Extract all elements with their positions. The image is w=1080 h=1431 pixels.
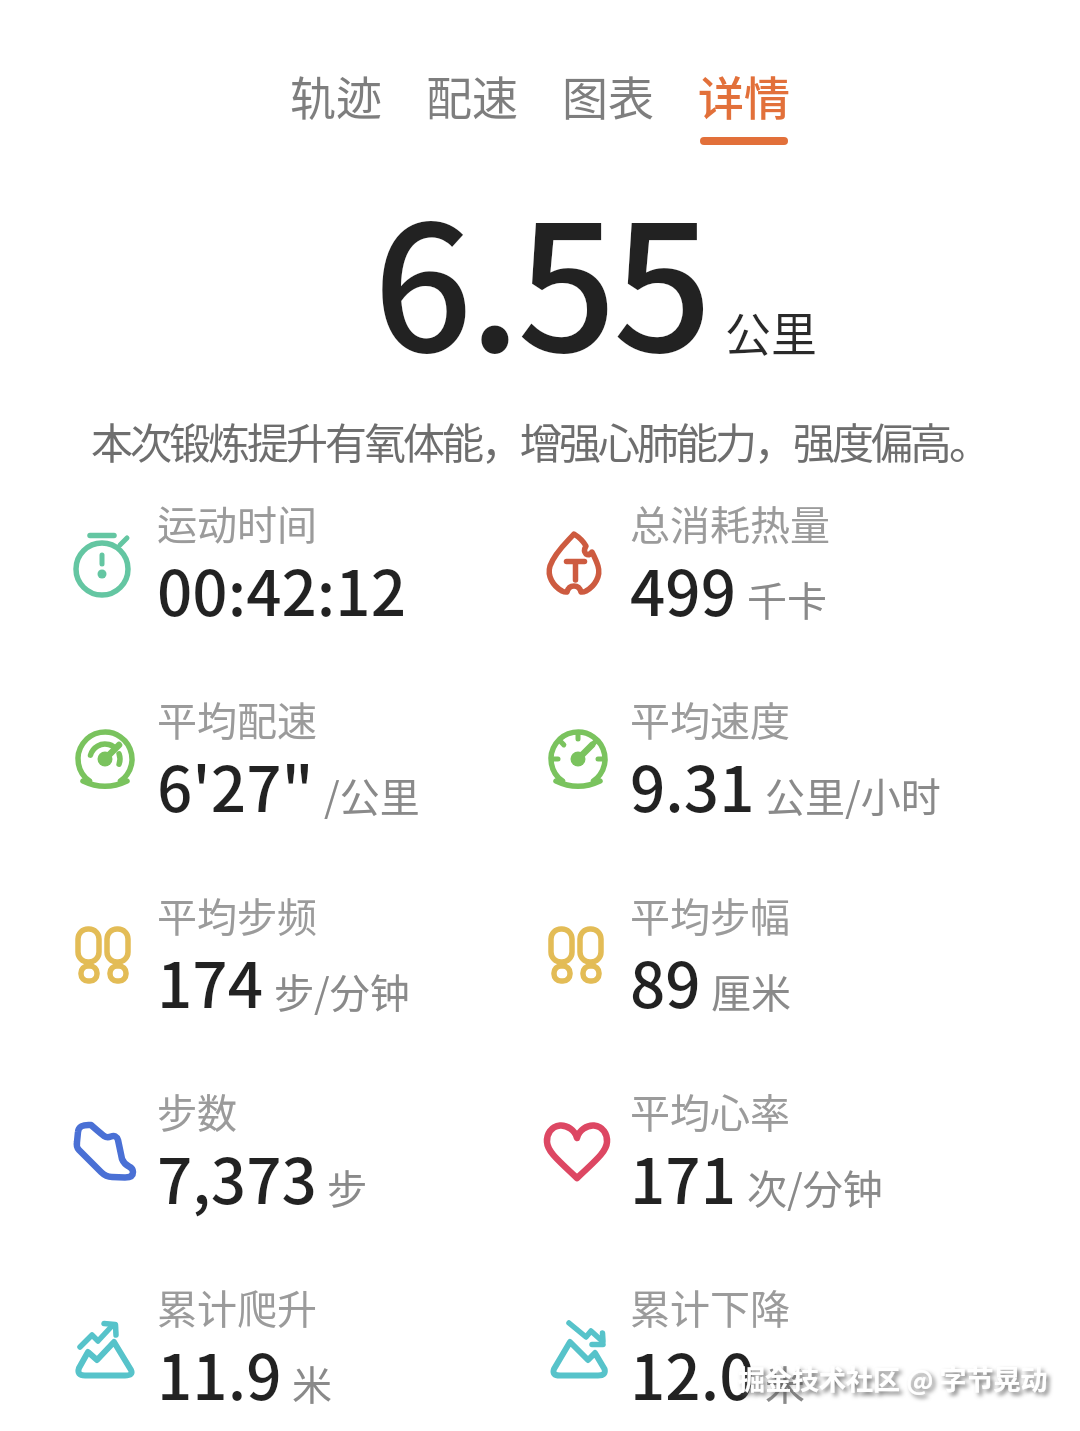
staticText: 9.31	[630, 740, 755, 830]
button[interactable]: 平均速度	[545, 690, 941, 838]
staticText: 11.9	[157, 1328, 282, 1418]
button[interactable]: 平均步幅	[545, 886, 791, 1034]
staticText: 步/分钟	[274, 962, 410, 1020]
staticText: 6'27"	[157, 740, 314, 830]
button[interactable]: 配速	[426, 62, 518, 137]
staticText: 厘米	[711, 962, 791, 1020]
staticText: 详情	[698, 62, 790, 129]
staticText: /公里	[324, 766, 420, 824]
button[interactable]: 累计爬升	[72, 1278, 332, 1426]
staticText: 174	[157, 936, 264, 1026]
staticText: 千卡	[747, 570, 827, 628]
button[interactable]: 轨迹	[290, 62, 382, 137]
staticText: 平均配速	[157, 690, 317, 748]
staticText: 累计爬升	[157, 1278, 317, 1336]
button[interactable]: 步数	[72, 1082, 367, 1230]
staticText: 次/分钟	[747, 1158, 883, 1216]
staticText: 平均速度	[630, 690, 790, 748]
staticText: 本次锻炼提升有氧体能，增强心肺能力，强度偏高。	[91, 410, 989, 471]
button[interactable]: 累计下降	[545, 1278, 805, 1426]
staticText: 米	[292, 1354, 332, 1412]
staticText: 12.0	[630, 1328, 755, 1418]
staticText: 总消耗热量	[630, 494, 830, 552]
staticText: 轨迹	[290, 62, 382, 129]
staticText: 步	[327, 1158, 367, 1216]
staticText: 配速	[426, 62, 518, 129]
button[interactable]: 详情	[698, 62, 790, 145]
staticText: 7,373	[157, 1132, 317, 1222]
staticText: 累计下降	[630, 1278, 790, 1336]
staticText: 499	[630, 544, 737, 634]
staticText: 步数	[157, 1082, 237, 1140]
staticText: 6.55	[373, 149, 709, 402]
button[interactable]: 平均配速	[72, 690, 420, 838]
button[interactable]: 平均心率	[545, 1082, 883, 1230]
staticText: 171	[630, 1132, 737, 1222]
staticText: 公里/小时	[765, 766, 941, 824]
button[interactable]: 图表	[562, 62, 654, 137]
staticText: 公里	[725, 298, 817, 365]
button[interactable]: 总消耗热量	[545, 494, 830, 642]
staticText: 掘金技术社区 @ 字节晃动	[738, 1359, 1048, 1398]
staticText: 图表	[562, 62, 654, 129]
staticText: 平均步频	[157, 886, 317, 944]
staticText: 平均心率	[630, 1082, 790, 1140]
staticText: 米	[765, 1354, 805, 1412]
button[interactable]: 平均步频	[72, 886, 410, 1034]
staticText: 运动时间	[157, 494, 317, 552]
button[interactable]: 运动时间	[72, 494, 406, 642]
staticText: 00:42:12	[157, 544, 406, 634]
staticText: 89	[630, 936, 701, 1026]
staticText: 平均步幅	[630, 886, 790, 944]
